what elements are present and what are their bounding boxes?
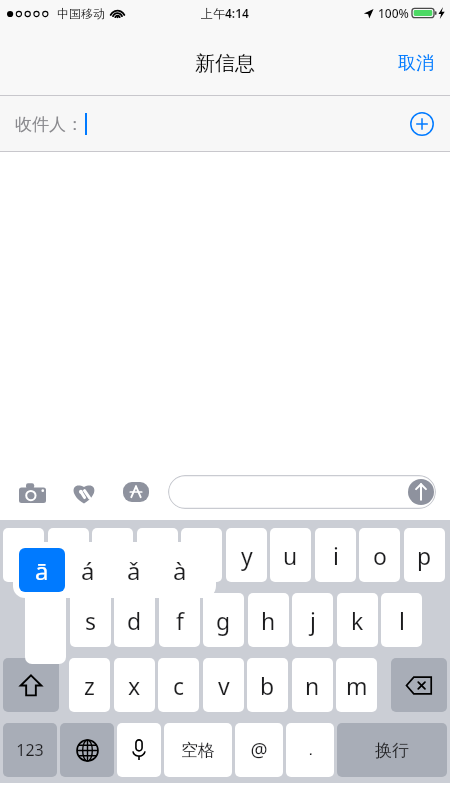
staticText: 空格 — [181, 740, 215, 761]
staticText: z — [84, 670, 95, 701]
staticText: 100% — [378, 5, 409, 21]
staticText: 123 — [16, 739, 44, 761]
button[interactable]: Send — [407, 478, 435, 506]
button[interactable]: 取消 — [382, 44, 450, 83]
button[interactable]: Send — [168, 475, 436, 509]
button[interactable]: x — [114, 658, 155, 712]
staticText: 上午4:14 — [201, 5, 249, 21]
staticText: p — [417, 540, 432, 571]
staticText: v — [218, 670, 230, 701]
staticText: à — [173, 554, 187, 587]
staticText: @ — [250, 737, 268, 763]
staticText: 换行 — [375, 740, 409, 761]
button[interactable]: o — [359, 528, 400, 582]
staticText: u — [283, 540, 298, 571]
button[interactable]: 123 — [3, 723, 57, 777]
button[interactable]: i — [315, 528, 356, 582]
button[interactable]: q — [3, 528, 44, 582]
button[interactable]: Add contact — [404, 106, 440, 142]
staticText: 中国移动 — [57, 6, 105, 21]
staticText: 取消 — [398, 52, 434, 75]
staticText: m — [346, 670, 368, 701]
button[interactable]: 空格 — [164, 723, 232, 777]
button[interactable]: e — [92, 528, 133, 582]
button[interactable]: Switch keyboard — [60, 723, 114, 777]
button[interactable]: ā — [19, 548, 65, 592]
button[interactable]: v — [203, 658, 244, 712]
button[interactable]: g — [203, 593, 244, 647]
staticText: c — [173, 670, 185, 701]
button[interactable]: n — [292, 658, 333, 712]
staticText: 收件人： — [15, 114, 83, 135]
staticText: i — [333, 540, 339, 571]
staticText: k — [351, 605, 364, 636]
button[interactable]: u — [270, 528, 311, 582]
button[interactable]: p — [404, 528, 445, 582]
staticText: o — [373, 540, 387, 571]
button[interactable]: m — [336, 658, 377, 712]
staticText: d — [127, 605, 142, 636]
staticText: 新信息 — [195, 51, 255, 76]
button[interactable]: App Store — [118, 474, 154, 510]
button[interactable]: Camera — [14, 474, 50, 510]
staticText: y — [241, 540, 253, 571]
button[interactable]: d — [114, 593, 155, 647]
button[interactable]: y — [226, 528, 267, 582]
button[interactable]: z — [69, 658, 110, 712]
button[interactable]: j — [292, 593, 333, 647]
button[interactable]: Delete — [391, 658, 447, 712]
button[interactable]: Digital Touch — [66, 474, 102, 510]
button[interactable]: ǎ — [111, 548, 157, 592]
button[interactable]: ． — [286, 723, 334, 777]
button[interactable]: h — [248, 593, 289, 647]
button[interactable]: c — [158, 658, 199, 712]
staticText: ǎ — [127, 554, 141, 587]
button[interactable]: @ — [235, 723, 283, 777]
button[interactable]: b — [247, 658, 288, 712]
staticText: g — [216, 605, 231, 636]
staticText: á — [81, 554, 95, 587]
staticText: n — [305, 670, 320, 701]
staticText: f — [176, 605, 184, 636]
staticText: w — [59, 540, 78, 571]
button[interactable]: t — [181, 528, 222, 582]
staticText: q — [16, 540, 31, 571]
button[interactable]: r — [137, 528, 178, 582]
staticText: ā — [35, 554, 49, 587]
button[interactable]: 换行 — [337, 723, 447, 777]
button[interactable]: k — [337, 593, 378, 647]
button[interactable]: Dictation — [117, 723, 161, 777]
button[interactable]: à — [157, 548, 203, 592]
button[interactable]: w — [48, 528, 89, 582]
button[interactable]: á — [65, 548, 111, 592]
staticText: l — [399, 605, 405, 636]
staticText: b — [260, 670, 275, 701]
button[interactable]: s — [70, 593, 111, 647]
button[interactable]: Shift — [3, 658, 59, 712]
button[interactable]: l — [381, 593, 422, 647]
staticText: h — [261, 605, 276, 636]
staticText: s — [85, 605, 97, 636]
staticText: ． — [303, 741, 318, 760]
button[interactable]: f — [159, 593, 200, 647]
staticText: x — [128, 670, 141, 701]
staticText: j — [310, 605, 316, 636]
